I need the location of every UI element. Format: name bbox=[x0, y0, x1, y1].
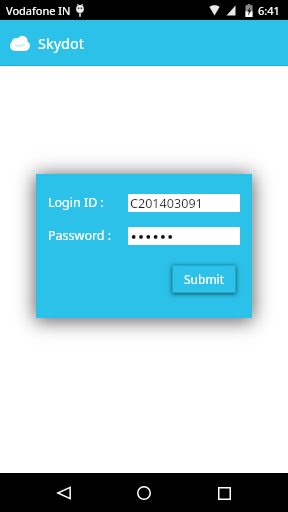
button[interactable]: Submit bbox=[172, 265, 236, 293]
button[interactable]: C201403091 bbox=[128, 194, 240, 212]
button[interactable]: Recent apps bbox=[202, 481, 246, 505]
button[interactable]: Back bbox=[42, 481, 86, 505]
staticText: C201403091 bbox=[130, 195, 203, 212]
staticText: Vodafone IN bbox=[6, 3, 71, 18]
staticText: Submit bbox=[184, 271, 225, 287]
staticText: Skydot bbox=[38, 33, 85, 53]
staticText: Password : bbox=[48, 227, 112, 244]
button[interactable] bbox=[128, 227, 240, 245]
staticText: Login ID : bbox=[48, 194, 104, 211]
button[interactable]: Home bbox=[122, 481, 166, 505]
staticText: 6:41 bbox=[258, 3, 280, 18]
